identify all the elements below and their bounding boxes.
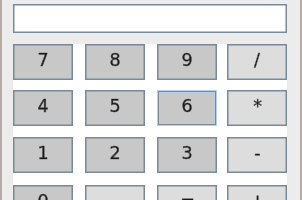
- staticText: 9: [181, 50, 193, 70]
- staticText: =: [180, 191, 195, 200]
- staticText: 0: [37, 191, 49, 200]
- button[interactable]: 8: [85, 44, 145, 80]
- staticText: =: [180, 191, 195, 200]
- button[interactable]: 6: [157, 90, 217, 126]
- button[interactable]: +: [227, 185, 287, 200]
- button[interactable]: =: [157, 185, 217, 200]
- button[interactable]: 4: [13, 90, 73, 126]
- staticText: 8: [109, 50, 121, 70]
- button[interactable]: /: [227, 44, 287, 80]
- staticText: 7: [37, 50, 49, 70]
- staticText: 3: [181, 143, 193, 163]
- button[interactable]: 5: [85, 90, 145, 126]
- staticText: 7: [37, 50, 49, 70]
- staticText: /: [254, 50, 260, 70]
- button[interactable]: 0: [13, 185, 73, 200]
- staticText: 9: [181, 50, 193, 70]
- button[interactable]: .: [85, 185, 145, 200]
- staticText: -: [254, 143, 261, 163]
- staticText: 6: [181, 96, 193, 116]
- button[interactable]: 7: [13, 44, 73, 80]
- staticText: 0: [37, 191, 49, 200]
- staticText: 1: [37, 143, 49, 163]
- staticText: 1: [37, 143, 49, 163]
- staticText: 2: [109, 143, 121, 163]
- button[interactable]: 3: [157, 137, 217, 173]
- staticText: +: [250, 191, 265, 200]
- staticText: *: [253, 96, 262, 116]
- button[interactable]: 2: [85, 137, 145, 173]
- staticText: 8: [109, 50, 121, 70]
- staticText: 5: [109, 96, 121, 116]
- staticText: 3: [181, 143, 193, 163]
- staticText: 5: [109, 96, 121, 116]
- staticText: 4: [37, 96, 49, 116]
- staticText: 2: [109, 143, 121, 163]
- staticText: -: [254, 143, 261, 163]
- staticText: *: [253, 96, 262, 116]
- staticText: 4: [37, 96, 49, 116]
- staticText: +: [250, 191, 265, 200]
- button[interactable]: -: [227, 137, 287, 173]
- staticText: /: [254, 50, 260, 70]
- button[interactable]: [13, 4, 287, 33]
- button[interactable]: *: [227, 90, 287, 126]
- button[interactable]: 1: [13, 137, 73, 173]
- staticText: 6: [181, 96, 193, 116]
- button[interactable]: 9: [157, 44, 217, 80]
